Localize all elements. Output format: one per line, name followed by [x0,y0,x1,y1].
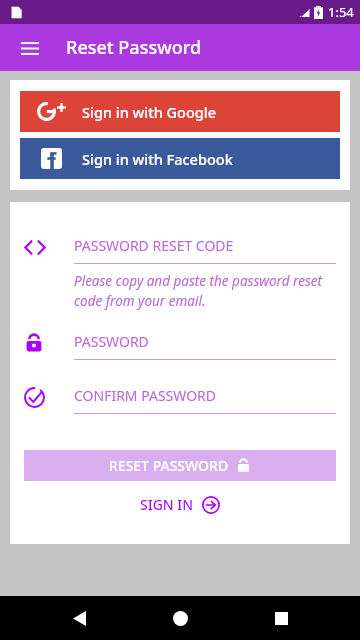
button[interactable]: Recent apps [259,596,303,640]
staticText: Sign in with Google [82,102,217,122]
button[interactable]: PASSWORD RESET CODE [24,236,336,264]
staticText: PASSWORD RESET CODE [74,236,234,255]
button[interactable]: SIGN IN [24,495,336,514]
staticText: RESET PASSWORD [109,456,229,475]
staticText: 1:54 [328,3,354,21]
button[interactable]: PASSWORD [24,332,336,360]
staticText: PASSWORD [74,332,149,351]
staticText: Reset Password [66,35,202,60]
staticText: Sign in with Facebook [82,149,233,169]
button[interactable]: Open navigation menu [10,28,50,68]
button[interactable]: RESET PASSWORD [24,450,336,481]
button[interactable]: Home [158,596,202,640]
button[interactable]: Back [57,596,101,640]
button[interactable]: CONFIRM PASSWORD [24,386,336,414]
staticText: Please copy and paste the password reset… [74,272,336,310]
button[interactable]: Sign in with Facebook [20,138,340,179]
staticText: CONFIRM PASSWORD [74,386,217,405]
staticText: SIGN IN [140,495,194,514]
button[interactable]: Sign in with Google [20,91,340,132]
